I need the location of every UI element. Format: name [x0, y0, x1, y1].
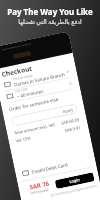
staticText: Login — [69, 177, 81, 184]
staticText: Damas Jo Sahara Branch — [13, 71, 66, 88]
staticText: > — [66, 68, 70, 74]
staticText: SAR 9.91 — [64, 125, 82, 133]
staticText: Total amount excl. VAT — [14, 122, 56, 136]
staticText: Pay The Way You Like — [7, 6, 93, 17]
staticText: ON TIME — [15, 87, 29, 93]
staticText: Credit/Debit Card — [31, 161, 68, 175]
button[interactable]: Credit/Debit Card — [22, 157, 89, 177]
button[interactable]: Login — [55, 172, 95, 189]
button[interactable]: Apply — [11, 103, 78, 127]
staticText: Checkout — [1, 64, 33, 79]
staticText: Apply — [62, 107, 74, 114]
staticText: SAR 76 — [29, 180, 50, 192]
staticText: By continuing you agree to terms — [50, 184, 97, 197]
staticText: Vat 15% — [15, 135, 31, 143]
button[interactable]: ON TIME — [5, 78, 73, 101]
other: PICKUP FROM — [3, 80, 12, 89]
staticText: > — [68, 80, 73, 86]
staticText: ~ 40 minutes — [16, 88, 44, 99]
button[interactable]: PICKUP FROM — [3, 66, 70, 90]
staticText: ادفع بالطريقة التي تفضلها — [18, 18, 82, 26]
staticText: PICKUP FROM — [13, 74, 33, 82]
staticText: Order for someone else — [8, 96, 59, 112]
staticText: VAT included — [30, 188, 49, 195]
other: ON TIME — [6, 92, 14, 100]
staticText: SAR 66.09 — [61, 117, 80, 126]
